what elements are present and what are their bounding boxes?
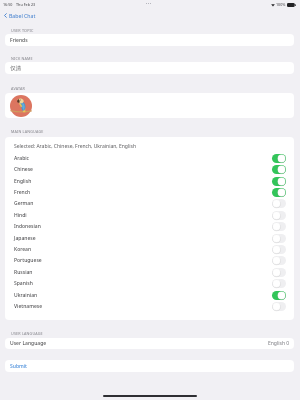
staticText: USER LANGUAGE [11,331,43,336]
button[interactable]: Arabic [5,153,294,164]
staticText: French [14,189,31,196]
staticText: User Language [10,340,47,347]
button[interactable]: English [5,176,294,187]
button[interactable]: Indonesian [5,221,294,232]
button[interactable]: Chinese [5,164,294,175]
staticText: Thu Feb 23 [16,2,36,7]
staticText: Selected: Arabic, Chinese, French, Ukrai… [14,143,137,150]
button[interactable]: 仅清 [5,62,294,74]
staticText: MAIN LANGUAGE [11,129,44,134]
staticText: German [14,200,34,207]
staticText: English 0 [268,340,290,347]
staticText: 16:50 [3,2,13,7]
button[interactable]: Submit [5,360,294,372]
button[interactable]: Hindi [5,210,294,221]
staticText: Arabic [14,155,30,162]
button[interactable]: Ukrainian [5,290,294,301]
staticText: 100% [276,2,286,7]
staticText: Ukrainian [14,292,38,299]
staticText: Portuguese [14,257,42,264]
staticText: Korean [14,246,32,253]
staticText: Japanese [14,235,36,242]
button[interactable]: Spanish [5,278,294,289]
button[interactable]: Portuguese [5,255,294,266]
staticText: Russian [14,269,33,276]
staticText: Friends [10,37,28,44]
button[interactable]: Back to Babel Chat [3,11,37,20]
staticText: NICK NAME [11,56,33,61]
button[interactable]: Russian [5,267,294,278]
staticText: Chinese [14,166,33,173]
staticText: Vietnamese [14,303,43,310]
staticText: Indonesian [14,223,41,230]
staticText: Spanish [14,280,33,287]
staticText: AVATAR [11,86,25,91]
staticText: USER TOPIC [11,28,34,33]
button[interactable]: Korean [5,244,294,255]
button[interactable]: Vietnamese [5,301,294,312]
button[interactable]: User Language picker [5,338,294,349]
staticText: Submit [10,363,27,370]
button[interactable]: German [5,198,294,209]
staticText: English [14,178,32,185]
button[interactable]: Friends [5,34,294,46]
button[interactable]: Japanese [5,233,294,244]
staticText: Babel Chat [9,12,36,19]
button[interactable]: French [5,187,294,198]
staticText: 仅清 [10,65,22,72]
staticText: Hindi [14,212,27,219]
button[interactable]: Avatar [5,93,294,118]
